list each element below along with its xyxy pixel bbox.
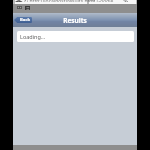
button[interactable]: Back (14, 17, 32, 23)
staticText: ≫ (123, 0, 129, 2)
button[interactable]: Page (25, 6, 30, 10)
button[interactable]: Loading... (17, 31, 134, 42)
staticText: Loading... (20, 33, 46, 40)
staticText: ○• Google (89, 0, 114, 2)
staticText: Results (63, 16, 87, 25)
staticText: Back (20, 17, 31, 23)
staticText: ◀▶ ↻ http://localhost/results.html (15, 0, 96, 2)
button[interactable]: Tabs (17, 6, 22, 9)
